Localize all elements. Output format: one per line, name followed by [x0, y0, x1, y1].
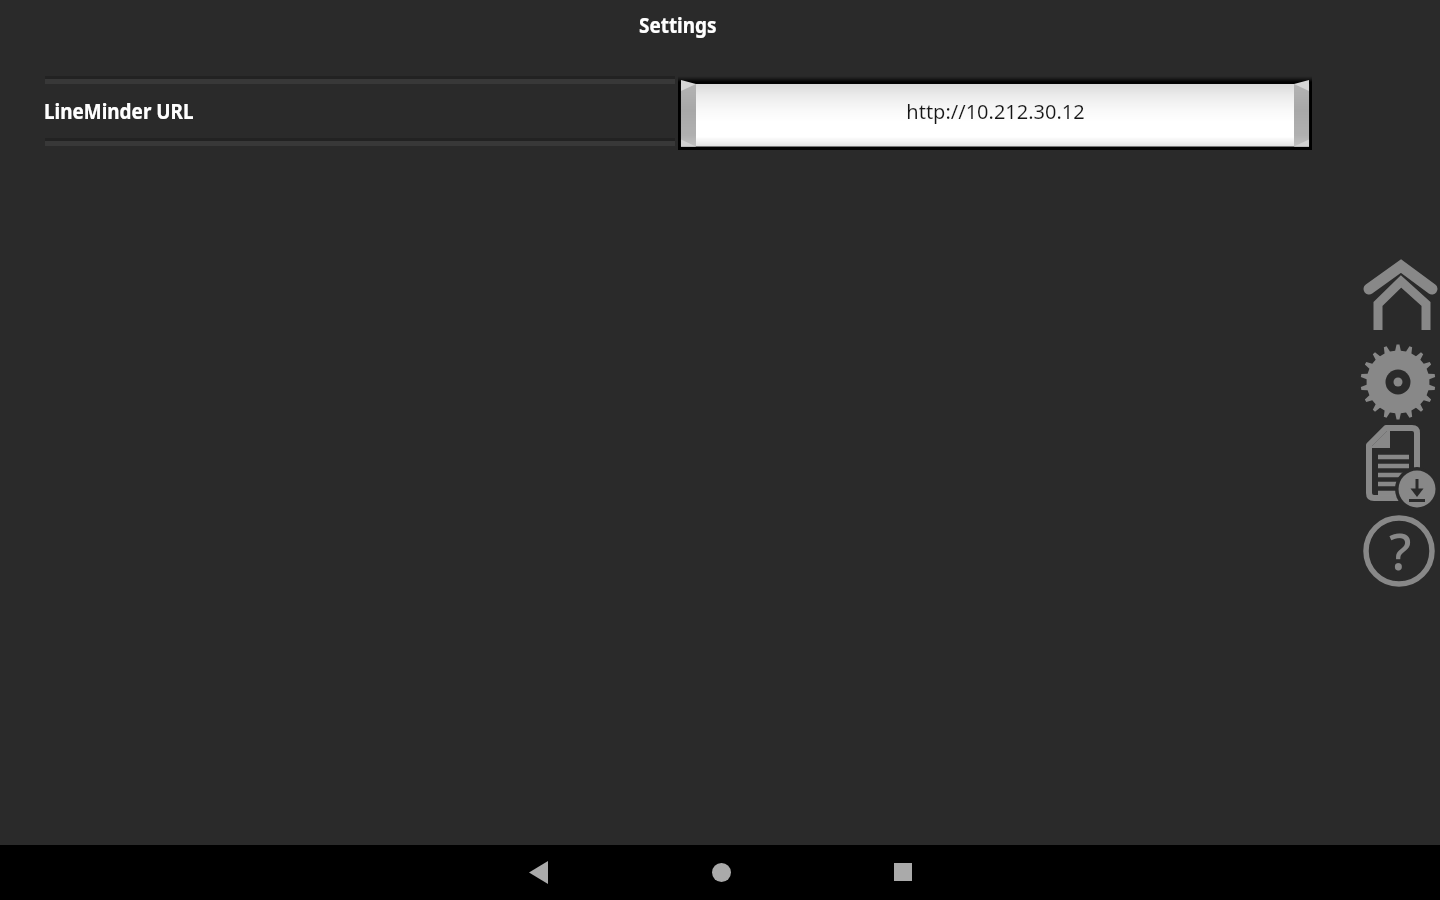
staticText: LineMinder URL [44, 95, 194, 125]
button[interactable]: Export log file [1361, 421, 1439, 511]
button[interactable]: Home [1356, 250, 1440, 335]
staticText: http://10.212.30.12 [906, 98, 1085, 125]
button[interactable]: Help [1362, 514, 1436, 588]
staticText: Settings [639, 11, 717, 40]
button[interactable]: Recent apps [873, 852, 933, 892]
button[interactable]: LineMinder URL [0, 79, 678, 141]
button[interactable]: http://10.212.30.12 [678, 76, 1312, 150]
staticText: ? [1389, 517, 1412, 585]
button[interactable]: Settings [1359, 344, 1437, 420]
button[interactable]: Back [508, 852, 568, 892]
button[interactable]: Home [691, 852, 751, 892]
